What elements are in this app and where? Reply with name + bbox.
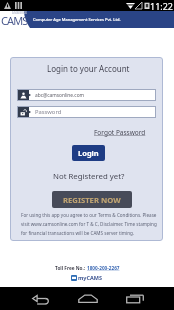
staticText: Password	[35, 108, 62, 116]
staticText: CAMS	[1, 13, 28, 28]
staticText: For using this app you agree to our Term…	[21, 212, 158, 236]
staticText: Forgot Password	[94, 128, 146, 137]
staticText: Not Registered yet?	[53, 171, 125, 182]
button[interactable]: Home	[68, 287, 108, 310]
staticText: 11:22	[150, 0, 174, 11]
staticText: myCAMS	[78, 274, 103, 281]
staticText: Computer Age Management Services Pvt. Lt…	[33, 17, 121, 22]
staticText: Toll Free No.:	[55, 265, 87, 271]
staticText: Login	[78, 148, 99, 158]
staticText: A MAVERICK	[12, 11, 27, 15]
button[interactable]: 1800-200-2267	[87, 265, 120, 271]
staticText: Login to your Account	[47, 63, 130, 74]
button[interactable]: Forgot Password	[94, 128, 146, 137]
button[interactable]: Recent apps	[115, 287, 155, 310]
button[interactable]: Login	[72, 145, 105, 161]
button[interactable]: REGISTER NOW	[52, 191, 132, 208]
staticText: REGISTER NOW	[63, 195, 121, 205]
button[interactable]: Back	[20, 287, 60, 310]
staticText: abc@camsonline.com	[35, 92, 85, 99]
